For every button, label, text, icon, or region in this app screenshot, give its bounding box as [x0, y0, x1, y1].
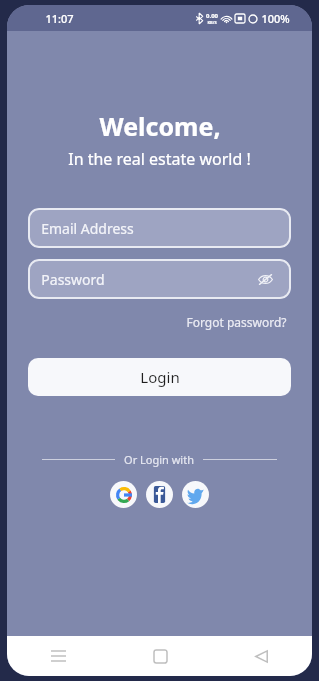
staticText: Login [140, 367, 180, 387]
staticText: 0.00 [206, 12, 218, 20]
button[interactable]: Email Address [28, 208, 291, 248]
staticText: 11:07 [45, 11, 74, 26]
staticText: 100% [261, 11, 290, 26]
button[interactable]: Forgot password? [182, 311, 291, 333]
staticText: Password [41, 270, 105, 289]
staticText: KB/S [207, 20, 217, 25]
staticText: Forgot password? [186, 314, 287, 330]
button[interactable]: Home [143, 639, 177, 673]
button[interactable]: Sign in with Facebook [146, 481, 173, 508]
staticText: Welcome, [99, 109, 221, 143]
button[interactable]: Menu [41, 639, 75, 673]
staticText: Email Address [41, 219, 134, 238]
button[interactable]: Back [244, 639, 278, 673]
button[interactable]: Show password [252, 266, 278, 292]
button[interactable]: Sign in with Twitter [182, 481, 209, 508]
button[interactable]: Login [28, 358, 291, 396]
button[interactable]: Sign in with Google [110, 481, 137, 508]
button[interactable]: Password [28, 259, 291, 299]
staticText: Or Login with [124, 452, 194, 467]
staticText: In the real estate world ! [68, 148, 251, 170]
